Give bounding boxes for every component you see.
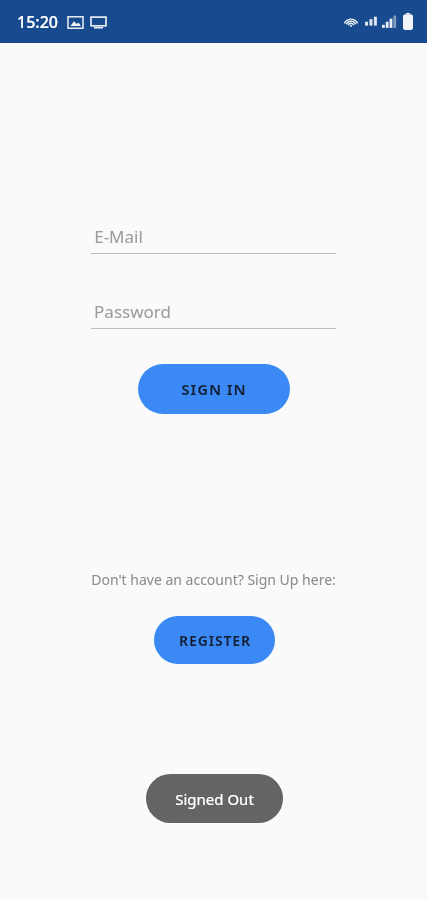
staticText: REGISTER (179, 631, 251, 650)
staticText: 15:20 (17, 11, 58, 33)
button[interactable]: Password (91, 299, 336, 329)
button[interactable]: Signed Out (146, 774, 283, 823)
staticText: SIGN IN (181, 379, 247, 399)
button[interactable]: SIGN IN (138, 364, 290, 414)
staticText: Don't have an account? Sign Up here: (91, 570, 336, 589)
staticText: E-Mail (94, 225, 143, 248)
button[interactable]: REGISTER (154, 616, 275, 664)
staticText: Password (94, 300, 171, 323)
staticText: Signed Out (175, 789, 254, 809)
button[interactable]: E-Mail (91, 224, 336, 254)
